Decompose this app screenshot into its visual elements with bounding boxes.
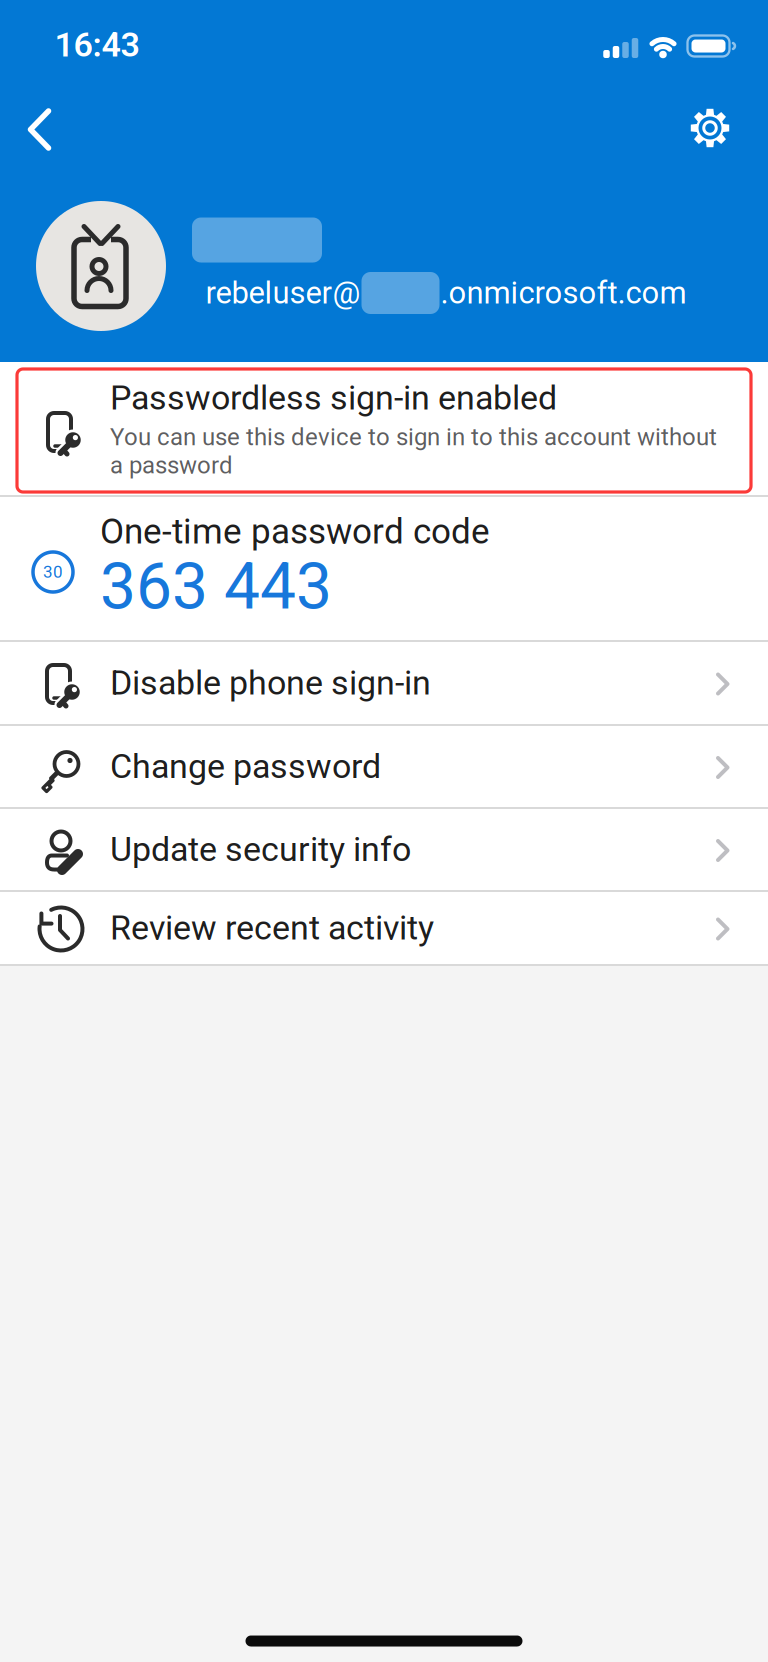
staticText: .onmicrosoft.com [440,275,686,311]
staticText: You can use this device to sign in to th… [110,423,717,479]
button[interactable]: Update security info [0,809,768,890]
button[interactable]: Disable phone sign-in [0,642,768,724]
staticText: Passwordless sign-in enabled [110,378,557,418]
staticText: Disable phone sign-in [110,663,431,703]
staticText: One-time password code [100,511,490,552]
staticText: 363 443 [100,549,332,624]
staticText: 16:43 [54,25,139,65]
button[interactable]: Change password [0,726,768,807]
staticText: Review recent activity [110,908,434,948]
button[interactable]: Back [16,104,64,156]
staticText: 30 [43,562,63,582]
button[interactable]: Settings [688,106,732,150]
staticText: Change password [110,747,381,786]
staticText: Update security info [110,830,411,869]
button[interactable]: Review recent activity [0,892,768,964]
staticText: rebeluser@ [205,275,360,311]
